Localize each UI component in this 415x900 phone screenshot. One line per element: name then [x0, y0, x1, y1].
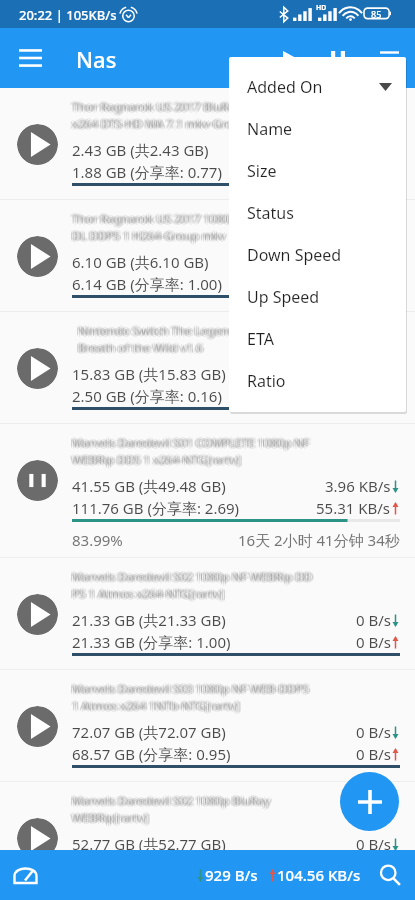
staticText: 0 B/s — [356, 856, 391, 876]
staticText: Breath of the Wild v1.6 — [72, 340, 203, 355]
staticText: Thor Ragnarok US 2017 BluRay 1080p — [70, 100, 276, 115]
staticText: Status — [247, 202, 294, 224]
staticText: 2.43 GB (共2.43 GB) — [72, 140, 209, 160]
staticText: Marvels Daredevil S02 1080p NF WEBRip DD — [72, 567, 313, 582]
staticText: 2.50 GB (分享率: 0.16) — [72, 386, 222, 406]
staticText: WEBRip[rartv] — [74, 811, 151, 826]
staticText: Up Speed — [247, 286, 320, 308]
staticText: 21.33 GB (分享率: 1.00) — [72, 632, 231, 652]
button[interactable]: Size — [229, 150, 406, 192]
button[interactable]: Resume torrent — [0, 200, 415, 312]
button[interactable]: Pause all — [314, 28, 362, 88]
button[interactable]: Up Speed — [229, 276, 406, 318]
button[interactable]: Resume torrent — [0, 312, 415, 424]
staticText: P5 1 Atmos x264-NTG[rartv] — [70, 587, 222, 602]
staticText: WEBRip DD5 1 x264-NTG[rartv] — [74, 451, 243, 466]
staticText: Thor Ragnarok US 2017 1080p WEB — [72, 213, 265, 228]
staticText: Thor Ragnarok US 2017 BluRay 1080p — [72, 99, 278, 114]
staticText: 1 Atmos x264 1NTb-NTG[rartv] — [74, 699, 242, 714]
staticText: 1 Atmos x264 1NTb-NTG[rartv] — [74, 698, 242, 713]
staticText: Marvels Daredevil S03 1080p NF WEB-DDP5 — [74, 682, 312, 697]
staticText: DL DDP5 1 H264-Group mkv — [74, 228, 228, 243]
staticText: Thor Ragnarok US 2017 BluRay 1080p — [74, 98, 280, 113]
staticText: 21.33 GB (共21.33 GB) — [72, 610, 226, 630]
staticText: 1 Atmos x264 1NTb-NTG[rartv] — [72, 696, 240, 711]
staticText: WEBRip[rartv] — [70, 810, 147, 825]
staticText: Marvels Daredevil S03 1080p NF WEB-DDP5 — [72, 683, 310, 698]
button[interactable]: Speed limits — [0, 850, 50, 900]
button[interactable]: Resume torrent — [0, 782, 415, 894]
button[interactable]: More options — [365, 28, 413, 88]
staticText: Breath of the Wild v1.6 — [74, 339, 205, 354]
button[interactable]: Resume torrent — [0, 88, 415, 200]
staticText: 1 Atmos x264 1NTb-NTG[rartv] — [72, 698, 240, 713]
staticText: P5 1 Atmos x264-NTG[rartv] — [70, 586, 222, 601]
staticText: WEBRip[rartv] — [70, 809, 147, 824]
staticText: Marvels Daredevil S02 1080p NF WEBRip DD — [74, 569, 315, 584]
staticText: Nas — [76, 44, 117, 74]
button[interactable]: Resume torrent — [17, 348, 58, 389]
button[interactable]: Ratio — [229, 360, 406, 402]
staticText: WEBRip[rartv] — [72, 810, 149, 825]
staticText: 20:22 | 105KB/s — [19, 6, 117, 24]
staticText: Marvels Daredevil S02 1080p NF WEBRip DD — [74, 568, 315, 583]
staticText: x264 DTS-HD MA 7.1 mkv-Group — [74, 116, 250, 131]
staticText: WEBRip DD5 1 x264-NTG[rartv] — [70, 452, 239, 467]
button[interactable]: Name — [229, 108, 406, 150]
staticText: Nintendo Switch The Legend — [70, 322, 234, 337]
button[interactable]: Resume torrent — [0, 558, 415, 670]
button[interactable]: Pause torrent — [0, 424, 415, 558]
staticText: 6.10 GB (共6.10 GB) — [72, 252, 209, 272]
staticText: WEBRip[rartv] — [72, 812, 149, 827]
button[interactable]: Resume torrent — [17, 594, 58, 635]
staticText: Marvels Daredevil S01 COMPLETE 1080p NF — [70, 435, 308, 450]
staticText: WEBRip[rartv] — [74, 810, 151, 825]
staticText: Marvels Daredevil S02 1080p NF WEBRip DD — [72, 571, 313, 586]
staticText: P5 1 Atmos x264-NTG[rartv] — [74, 587, 226, 602]
staticText: 1 Atmos x264 1NTb-NTG[rartv] — [70, 699, 238, 714]
button[interactable]: ETA — [229, 318, 406, 360]
staticText: DL DDP5 1 H264-Group mkv — [70, 229, 224, 244]
staticText: 0 B/s — [356, 834, 391, 854]
staticText: Nintendo Switch The Legend — [74, 323, 238, 338]
button[interactable]: Search — [365, 850, 415, 900]
staticText: x264 DTS-HD MA 7.1 mkv-Group — [72, 118, 248, 133]
button[interactable]: Pause torrent — [17, 460, 58, 501]
staticText: WEBRip DD5 1 x264-NTG[rartv] — [72, 450, 241, 465]
staticText: P5 1 Atmos x264-NTG[rartv] — [70, 585, 222, 600]
staticText: 3.96 KB/s — [325, 476, 391, 496]
button[interactable]: Add torrent — [340, 772, 399, 831]
staticText: Marvels Daredevil S02 1080p NF WEBRip DD — [72, 569, 313, 584]
button[interactable]: Resume torrent — [0, 670, 415, 782]
button[interactable]: Resume torrent — [17, 818, 58, 859]
staticText: x264 DTS-HD MA 7.1 mkv-Group — [70, 116, 246, 131]
button[interactable]: Status — [229, 192, 406, 234]
staticText: Nintendo Switch The Legend — [72, 323, 236, 338]
staticText: x264 DTS-HD MA 7.1 mkv-Group — [70, 115, 246, 130]
staticText: x264 DTS-HD MA 7.1 mkv-Group — [74, 117, 250, 132]
staticText: DL DDP5 1 H264-Group mkv — [74, 227, 228, 242]
button[interactable]: Down Speed — [229, 234, 406, 276]
button[interactable]: Resume torrent — [17, 706, 58, 747]
staticText: Thor Ragnarok US 2017 BluRay 1080p — [72, 97, 278, 112]
staticText: Marvels Daredevil S01 COMPLETE 1080p NF — [74, 436, 312, 451]
staticText: Marvels Daredevil S01 COMPLETE 1080p NF — [74, 435, 312, 450]
staticText: Marvels Daredevil S01 COMPLETE 1080p NF — [72, 437, 310, 452]
staticText: Thor Ragnarok US 2017 BluRay 1080p — [70, 99, 276, 114]
staticText: x264 DTS-HD MA 7.1 mkv-Group — [70, 117, 246, 132]
staticText: Nintendo Switch The Legend — [72, 321, 236, 336]
staticText: Thor Ragnarok US 2017 1080p WEB — [72, 211, 265, 226]
staticText: Breath of the Wild v1.6 — [70, 341, 201, 356]
button[interactable]: Resume all — [266, 28, 314, 88]
staticText: Marvels Daredevil S01 COMPLETE 1080p NF — [74, 434, 312, 449]
staticText: 6.14 GB (分享率: 1.00) — [72, 274, 222, 294]
staticText: Thor Ragnarok US 2017 1080p WEB — [70, 212, 263, 227]
staticText: 83.99% — [72, 530, 123, 550]
button[interactable]: Open navigation drawer — [2, 28, 58, 88]
staticText: Marvels Daredevil S02 1080p NF WEBRip DD — [70, 568, 311, 583]
button[interactable]: Resume torrent — [17, 236, 58, 277]
staticText: Marvels Daredevil S01 COMPLETE 1080p NF — [72, 433, 310, 448]
staticText: Marvels Daredevil S02 1080p BluRay — [74, 794, 272, 809]
button[interactable]: Resume torrent — [17, 124, 58, 165]
button[interactable]: Added On — [229, 66, 406, 108]
